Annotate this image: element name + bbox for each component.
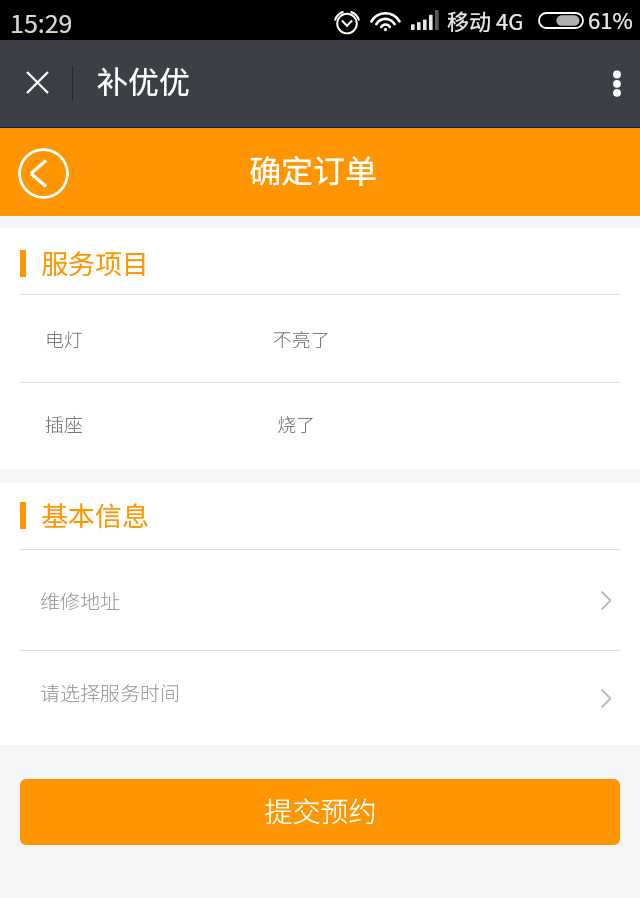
staticText: 61% [588, 3, 633, 35]
staticText: 确定订单 [249, 146, 378, 192]
staticText: 补优优 [97, 58, 190, 103]
staticText: 基本信息 [41, 495, 149, 534]
button[interactable]: 电灯 [0, 295, 640, 382]
staticText: 插座 [45, 410, 84, 438]
staticText: 不亮了 [273, 325, 331, 353]
button[interactable]: More options [595, 62, 639, 106]
button[interactable]: 提交预约 [20, 779, 620, 845]
staticText: 维修地址 [40, 586, 120, 615]
button[interactable]: 插座 [0, 383, 640, 469]
staticText: 移动 4G [447, 4, 524, 36]
staticText: 服务项目 [41, 243, 149, 282]
button[interactable]: 请选择服务时间 [0, 651, 640, 745]
button[interactable]: 维修地址 [0, 550, 640, 650]
staticText: 提交预约 [264, 790, 377, 831]
staticText: 请选择服务时间 [40, 678, 180, 707]
staticText: 电灯 [45, 325, 84, 353]
staticText: 15:29 [10, 4, 73, 40]
button[interactable]: Close [8, 55, 66, 113]
staticText: 烧了 [277, 410, 316, 438]
button[interactable]: Back [18, 148, 69, 199]
